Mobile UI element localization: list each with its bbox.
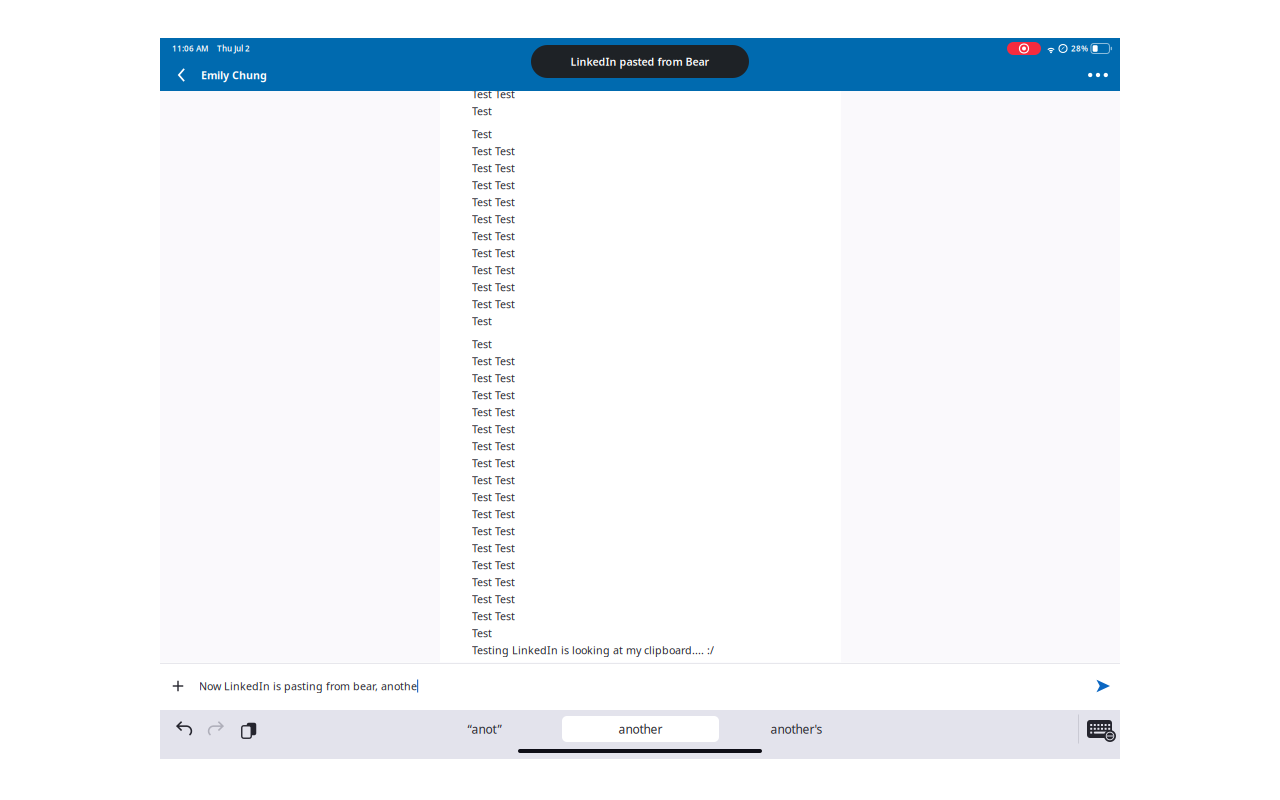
staticText: Test (472, 104, 492, 118)
staticText: Test Test (472, 524, 515, 538)
staticText: Test (472, 314, 492, 328)
staticText: Test Test (472, 195, 515, 209)
staticText: Test Test (472, 354, 515, 368)
staticText: Test Test (472, 575, 515, 589)
staticText: Test Test (472, 456, 515, 470)
staticText: Test (472, 337, 492, 351)
staticText: Test Test (472, 280, 515, 294)
button[interactable]: Send (1086, 663, 1120, 709)
button[interactable]: “anot” (407, 716, 562, 742)
staticText: 28% (1071, 43, 1088, 54)
staticText: Test Test (472, 297, 515, 311)
staticText: Test Test (472, 212, 515, 226)
staticText: another's (770, 721, 822, 737)
staticText: Test Test (472, 507, 515, 521)
staticText: Test Test (472, 229, 515, 243)
staticText: Test Test (472, 371, 515, 385)
button[interactable]: Undo (169, 714, 200, 744)
staticText: Test Test (472, 144, 515, 158)
staticText: Test Test (472, 439, 515, 453)
staticText: Test Test (472, 592, 515, 606)
staticText: Test Test (472, 558, 515, 572)
staticText: Test Test (472, 490, 515, 504)
button[interactable]: Redo (200, 714, 231, 744)
button[interactable]: another (562, 716, 719, 742)
staticText: Testing LinkedIn is looking at my clipbo… (472, 643, 714, 657)
staticText: Test Test (472, 541, 515, 555)
staticText: Test Test (472, 263, 515, 277)
staticText: Emily Chung (201, 68, 267, 82)
button[interactable]: Add attachment (160, 663, 196, 709)
staticText: Test Test (472, 161, 515, 175)
staticText: Now LinkedIn is pasting from bear, anoth… (199, 679, 417, 693)
staticText: “anot” (467, 721, 501, 737)
staticText: Test Test (472, 473, 515, 487)
staticText: Test Test (472, 87, 515, 101)
staticText: Test Test (472, 405, 515, 419)
staticText: Thu Jul 2 (217, 43, 250, 54)
button[interactable]: More options (1078, 59, 1118, 91)
staticText: Test Test (472, 388, 515, 402)
staticText: Test Test (472, 246, 515, 260)
button[interactable]: Dismiss keyboard (1079, 714, 1120, 744)
button[interactable]: another's (719, 716, 874, 742)
button[interactable]: Emily Chung (160, 59, 283, 91)
staticText: LinkedIn pasted from Bear (570, 54, 709, 69)
button[interactable]: Paste (231, 714, 262, 744)
staticText: Test (472, 127, 492, 141)
staticText: Test Test (472, 422, 515, 436)
staticText: Test Test (472, 178, 515, 192)
staticText: 11:06 AM (172, 43, 208, 54)
staticText: Test (472, 626, 492, 640)
staticText: Test Test (472, 609, 515, 623)
staticText: another (618, 721, 662, 737)
